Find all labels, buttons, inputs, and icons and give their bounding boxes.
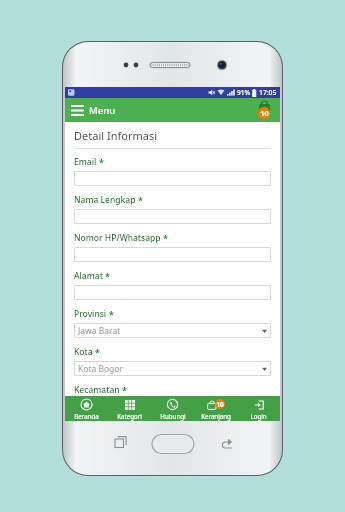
staticText: * [105, 270, 110, 282]
button[interactable]: Kategori [108, 396, 151, 421]
button[interactable]: Keranjang [254, 100, 274, 120]
staticText: * [109, 308, 114, 320]
button[interactable] [74, 285, 271, 300]
button[interactable]: Menu [70, 102, 117, 119]
staticText: Nomor HP/Whatsapp [74, 232, 161, 244]
staticText: Email [74, 156, 97, 168]
staticText: Hubungi [160, 412, 186, 420]
button[interactable] [74, 247, 271, 262]
button[interactable] [74, 171, 271, 186]
staticText: * [99, 156, 104, 168]
staticText: Kategori [117, 412, 142, 420]
button[interactable]: Kota Bogor [74, 361, 271, 376]
button[interactable]: Login [237, 396, 280, 421]
staticText: Kota Bogor [78, 363, 123, 375]
staticText: Jawa Barat [78, 325, 121, 337]
button[interactable]: Beranda [65, 396, 108, 421]
staticText: Menu [89, 104, 116, 117]
button[interactable]: Hubungi [151, 396, 194, 421]
staticText: Keranjang [201, 412, 231, 420]
staticText: Kota [74, 346, 93, 358]
staticText: Alamat [74, 270, 103, 282]
staticText: 10 [260, 108, 269, 118]
staticText: 10 [216, 400, 224, 408]
staticText: * [122, 384, 127, 396]
staticText: Login [250, 412, 267, 420]
staticText: 91% [237, 88, 250, 97]
staticText: Nama Lengkap [74, 194, 136, 206]
staticText: 17:05 [259, 88, 277, 97]
staticText: * [138, 194, 143, 206]
button[interactable]: Jawa Barat [74, 323, 271, 338]
staticText: Beranda [74, 412, 99, 420]
staticText: Provinsi [74, 308, 107, 320]
staticText: Kecamatan [74, 384, 120, 396]
button[interactable]: 10 [194, 396, 237, 421]
button[interactable] [74, 209, 271, 224]
staticText: Detail Informasi [74, 128, 157, 143]
staticText: * [95, 346, 100, 358]
staticText: * [163, 232, 168, 244]
